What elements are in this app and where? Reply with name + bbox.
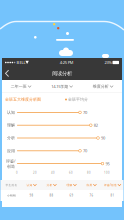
- staticText: 14-15学期: [51, 84, 68, 89]
- button[interactable]: 理解: [61, 180, 81, 189]
- staticText: 分析: [46, 183, 52, 187]
- staticText: 维度分析: [93, 84, 109, 89]
- staticText: 理解: [7, 123, 15, 128]
- staticText: 评鉴/: [6, 158, 15, 164]
- button[interactable]: 维度分析: [84, 80, 122, 93]
- staticText: 认知: [26, 183, 32, 187]
- button[interactable]: 评鉴/创造: [101, 180, 123, 189]
- staticText: 80: [87, 171, 91, 174]
- staticText: 95: [105, 161, 109, 166]
- staticText: 81: [110, 194, 114, 197]
- staticText: 阅读分析: [52, 70, 72, 77]
- staticText: 创造: [7, 164, 15, 169]
- staticText: 学生姓名: [5, 183, 17, 187]
- staticText: 23%: [104, 60, 111, 65]
- staticText: 小明明: [7, 194, 16, 197]
- staticText: 4:25 PM: [60, 60, 74, 65]
- staticText: 100: [104, 171, 110, 174]
- button[interactable]: 14-15学期: [40, 80, 84, 93]
- staticText: 98: [29, 194, 33, 197]
- staticText: 应用: [86, 183, 92, 187]
- button[interactable]: 应用: [81, 180, 101, 189]
- staticText: 70: [83, 110, 87, 115]
- button[interactable]: 认知: [21, 180, 41, 189]
- staticText: 二年一班: [11, 84, 27, 89]
- button[interactable]: 二年一班: [2, 80, 40, 93]
- staticText: 40: [51, 171, 55, 174]
- staticText: 20: [33, 171, 37, 174]
- staticText: 认知: [7, 110, 15, 115]
- staticText: BELL: [15, 60, 25, 65]
- staticText: 88: [49, 194, 53, 197]
- staticText: 70: [83, 148, 87, 153]
- staticText: 90: [101, 135, 105, 141]
- staticText: 应用: [7, 148, 15, 153]
- staticText: 评鉴/创造: [104, 183, 117, 187]
- staticText: 82: [94, 122, 98, 128]
- staticText: 全班平均分: [67, 97, 88, 102]
- staticText: 全班五大维度分析图: [5, 97, 41, 102]
- staticText: 60: [69, 171, 73, 174]
- button[interactable]: 分析: [41, 180, 61, 189]
- staticText: 理解: [66, 183, 72, 187]
- staticText: 分析: [7, 135, 15, 140]
- staticText: 69: [69, 194, 73, 197]
- button[interactable]: Back: [2, 67, 13, 80]
- staticText: 0: [16, 171, 18, 174]
- staticText: 76: [89, 194, 93, 197]
